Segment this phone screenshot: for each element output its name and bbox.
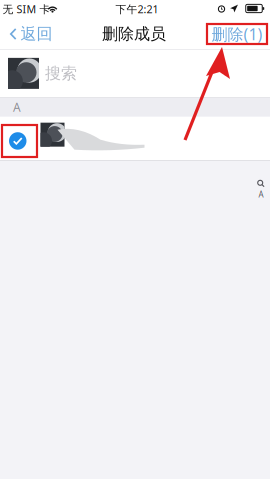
- button[interactable]: Section index: [255, 180, 267, 200]
- staticText: 无 SIM 卡: [2, 2, 50, 16]
- staticText: A: [258, 189, 263, 200]
- staticText: 删除(1): [211, 23, 262, 45]
- staticText: 下午2:21: [115, 2, 158, 16]
- staticText: A: [13, 99, 21, 115]
- staticText: 返回: [20, 24, 52, 44]
- button[interactable]: 删除(1): [206, 17, 267, 51]
- button[interactable]: [0, 117, 270, 160]
- staticText: 删除成员: [102, 24, 166, 44]
- button[interactable]: 返回: [4, 18, 57, 50]
- button[interactable]: 搜索: [0, 50, 270, 97]
- staticText: 搜索: [45, 63, 77, 83]
